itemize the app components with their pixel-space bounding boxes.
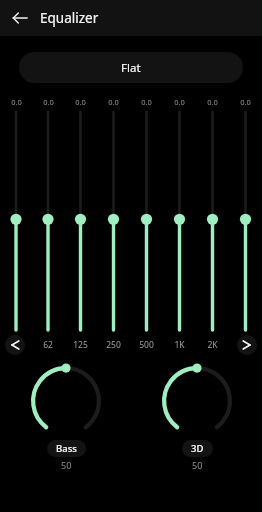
button[interactable]: Band 250 level <box>97 112 130 330</box>
staticText: 0.0 <box>141 97 152 107</box>
staticText: 125 <box>73 339 88 351</box>
button[interactable]: Band 31 level <box>0 112 32 330</box>
staticText: 0.0 <box>207 97 218 107</box>
staticText: 2K <box>207 339 218 351</box>
staticText: 0.0 <box>240 97 251 107</box>
button[interactable]: Band 1K level <box>163 112 196 330</box>
button[interactable]: Next bands <box>237 335 257 355</box>
staticText: 0.0 <box>11 97 22 107</box>
button[interactable]: Back <box>8 6 32 30</box>
button[interactable]: 3D level 50 <box>160 364 234 471</box>
staticText: 50 <box>192 459 203 471</box>
staticText: 0.0 <box>108 97 119 107</box>
staticText: 1K <box>174 339 185 351</box>
staticText: 62 <box>43 339 53 351</box>
button[interactable]: Band 62 level <box>32 112 64 330</box>
button[interactable]: Band 4K level <box>229 112 262 330</box>
button[interactable]: Flat <box>19 52 243 83</box>
staticText: 250 <box>106 339 121 351</box>
button[interactable]: Previous bands <box>5 335 25 355</box>
staticText: Bass <box>56 442 77 455</box>
staticText: 0.0 <box>75 97 86 107</box>
staticText: 50 <box>61 459 72 471</box>
staticText: 31 <box>11 339 21 351</box>
staticText: 4K <box>240 339 251 351</box>
staticText: 0.0 <box>174 97 185 107</box>
staticText: 500 <box>139 339 154 351</box>
staticText: 0.0 <box>43 97 54 107</box>
button[interactable]: Bass level 50 <box>29 364 103 471</box>
staticText: Equalizer <box>40 9 99 27</box>
staticText: 3D <box>191 442 204 455</box>
button[interactable]: Band 125 level <box>64 112 97 330</box>
staticText: Flat <box>121 60 141 76</box>
button[interactable]: Band 2K level <box>196 112 229 330</box>
button[interactable]: Band 500 level <box>130 112 163 330</box>
